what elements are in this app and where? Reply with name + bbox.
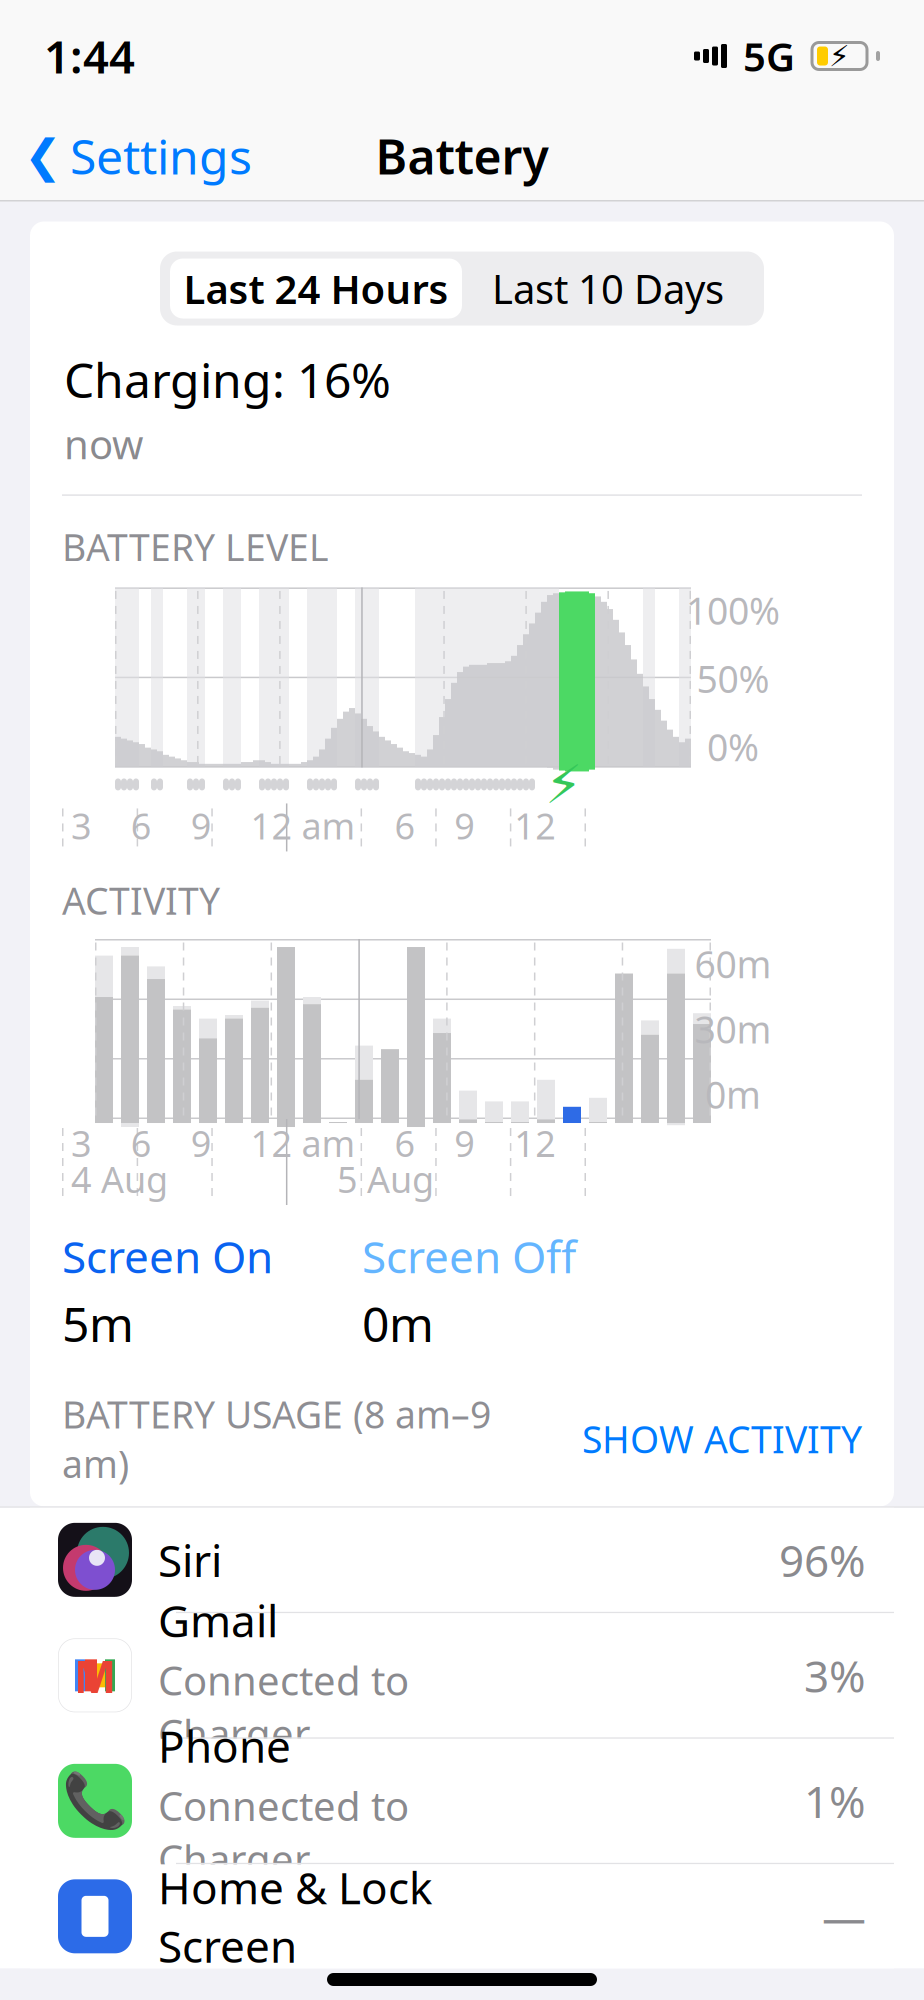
staticText: 4 Aug (71, 1155, 168, 1203)
staticText: 5G (743, 29, 795, 82)
button[interactable]: M (30, 1613, 894, 1739)
staticText: 12 (514, 1119, 556, 1167)
staticText: Connected to Charger (158, 1653, 409, 1760)
staticText: 9 (454, 1119, 475, 1167)
staticText: 30m (694, 1004, 771, 1054)
staticText: 12 (514, 801, 556, 849)
staticText: 6 (394, 801, 415, 849)
staticText: Last 24 Hours (183, 262, 448, 315)
staticText: ⚡︎ (545, 754, 582, 815)
staticText: ACTIVITY (62, 875, 220, 925)
staticText: 5m (62, 1291, 134, 1355)
staticText: Screen On (62, 1227, 273, 1285)
staticText: 96% (779, 1531, 866, 1589)
staticText: Gmail (158, 1591, 278, 1649)
staticText: SHOW ACTIVITY (582, 1414, 862, 1464)
button[interactable]: Last 10 Days (462, 258, 754, 318)
staticText: 0m (705, 1069, 761, 1119)
button[interactable]: Screen On (62, 1227, 273, 1285)
button[interactable]: 📞 (30, 1739, 894, 1864)
staticText: 100% (686, 585, 780, 635)
staticText: 3% (804, 1646, 866, 1704)
staticText: Home & Lock Screen (158, 1858, 432, 1975)
staticText: ❮ (24, 130, 62, 182)
staticText: 1:44 (44, 26, 135, 86)
staticText: — (822, 1887, 866, 1945)
staticText: Battery (375, 124, 548, 188)
staticText: 3 (71, 801, 92, 849)
staticText: 0% (707, 722, 759, 771)
staticText: 5 Aug (337, 1155, 434, 1203)
staticText: Settings (70, 124, 252, 188)
staticText: 60m (694, 939, 771, 989)
staticText: 9 (191, 1119, 212, 1167)
button[interactable]: Siri (30, 1508, 894, 1613)
button[interactable]: Last 24 Hours (170, 258, 462, 318)
staticText: 6 (394, 1119, 415, 1167)
staticText: 9 (191, 801, 212, 849)
staticText: 3 (71, 1119, 92, 1167)
button[interactable]: Home & Lock Screen (30, 1864, 894, 1968)
staticText: Phone (158, 1716, 291, 1775)
button[interactable]: Screen Off (362, 1227, 576, 1285)
staticText: 0m (362, 1291, 434, 1355)
staticText: 9 (454, 801, 475, 849)
staticText: 50% (696, 654, 769, 703)
staticText: 6 (131, 1119, 152, 1167)
staticText: now (64, 417, 143, 470)
staticText: Connected to Charger (158, 1779, 409, 1885)
staticText: Siri (158, 1531, 222, 1589)
staticText: BATTERY LEVEL (62, 522, 329, 571)
button[interactable]: ❮ (18, 114, 258, 198)
staticText: Screen Off (362, 1227, 576, 1285)
staticText: 6 (131, 801, 152, 849)
staticText: Last 10 Days (492, 262, 724, 315)
staticText: BATTERY USAGE (8 am–9 am) (62, 1389, 491, 1488)
staticText: 12 am (251, 1119, 356, 1167)
staticText: ⚡︎ (829, 39, 850, 73)
staticText: M (73, 1645, 116, 1705)
button[interactable]: SHOW ACTIVITY (582, 1414, 862, 1464)
staticText: 12 am (251, 801, 356, 849)
staticText: Charging: 16% (64, 347, 391, 411)
staticText: 1% (804, 1772, 866, 1830)
staticText: 📞 (62, 1770, 128, 1831)
